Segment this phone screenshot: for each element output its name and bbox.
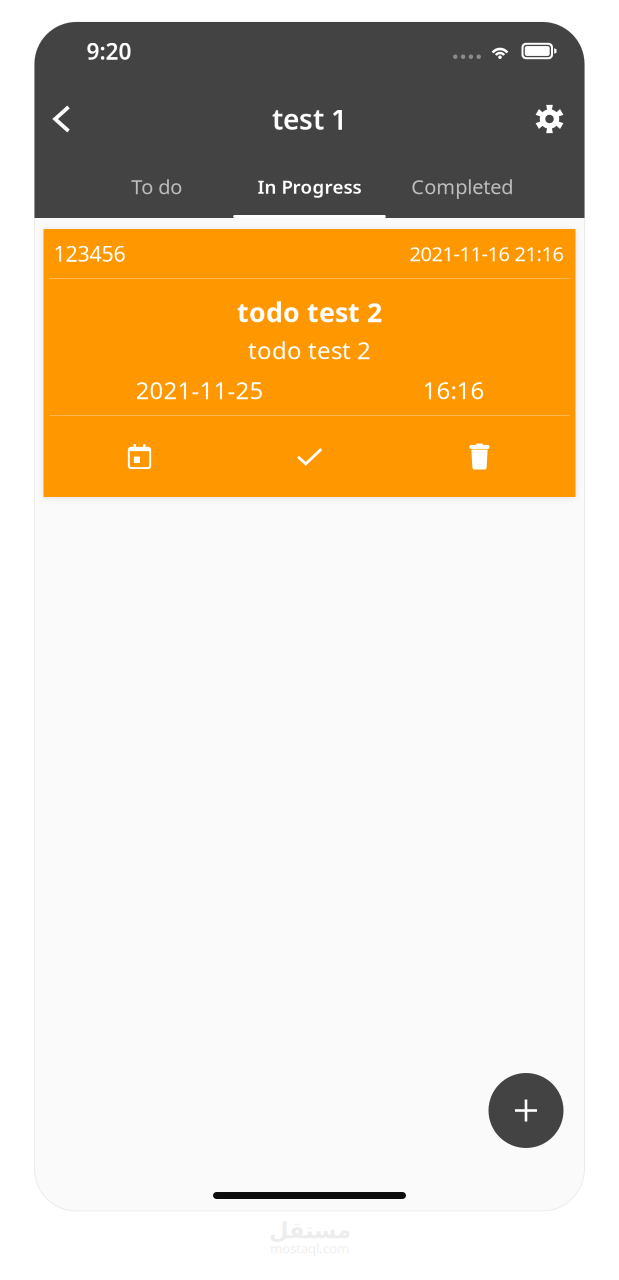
button[interactable]: Delete xyxy=(452,427,506,485)
button[interactable]: Add task xyxy=(488,1073,563,1148)
staticText: todo test 2 xyxy=(237,294,382,330)
staticText: مستقل xyxy=(268,1218,350,1243)
button[interactable]: Back xyxy=(39,89,83,149)
button[interactable]: Reschedule xyxy=(112,427,166,485)
button[interactable]: To do xyxy=(80,158,233,218)
staticText: 16:16 xyxy=(422,374,484,406)
staticText: To do xyxy=(131,173,182,200)
staticText: 9:20 xyxy=(86,36,131,66)
staticText: In Progress xyxy=(257,174,361,199)
staticText: test 1 xyxy=(272,100,347,138)
button[interactable]: In Progress xyxy=(233,158,386,218)
staticText: 123456 xyxy=(53,239,125,268)
staticText: mostaql.com xyxy=(270,1239,349,1257)
button[interactable]: Settings xyxy=(527,89,571,149)
button[interactable]: Mark complete xyxy=(282,427,336,485)
staticText: 2021-11-25 xyxy=(135,374,263,406)
staticText: 2021-11-16 21:16 xyxy=(409,240,563,267)
staticText: Completed xyxy=(411,173,513,200)
staticText: todo test 2 xyxy=(248,334,371,366)
button[interactable]: Completed xyxy=(386,158,538,218)
